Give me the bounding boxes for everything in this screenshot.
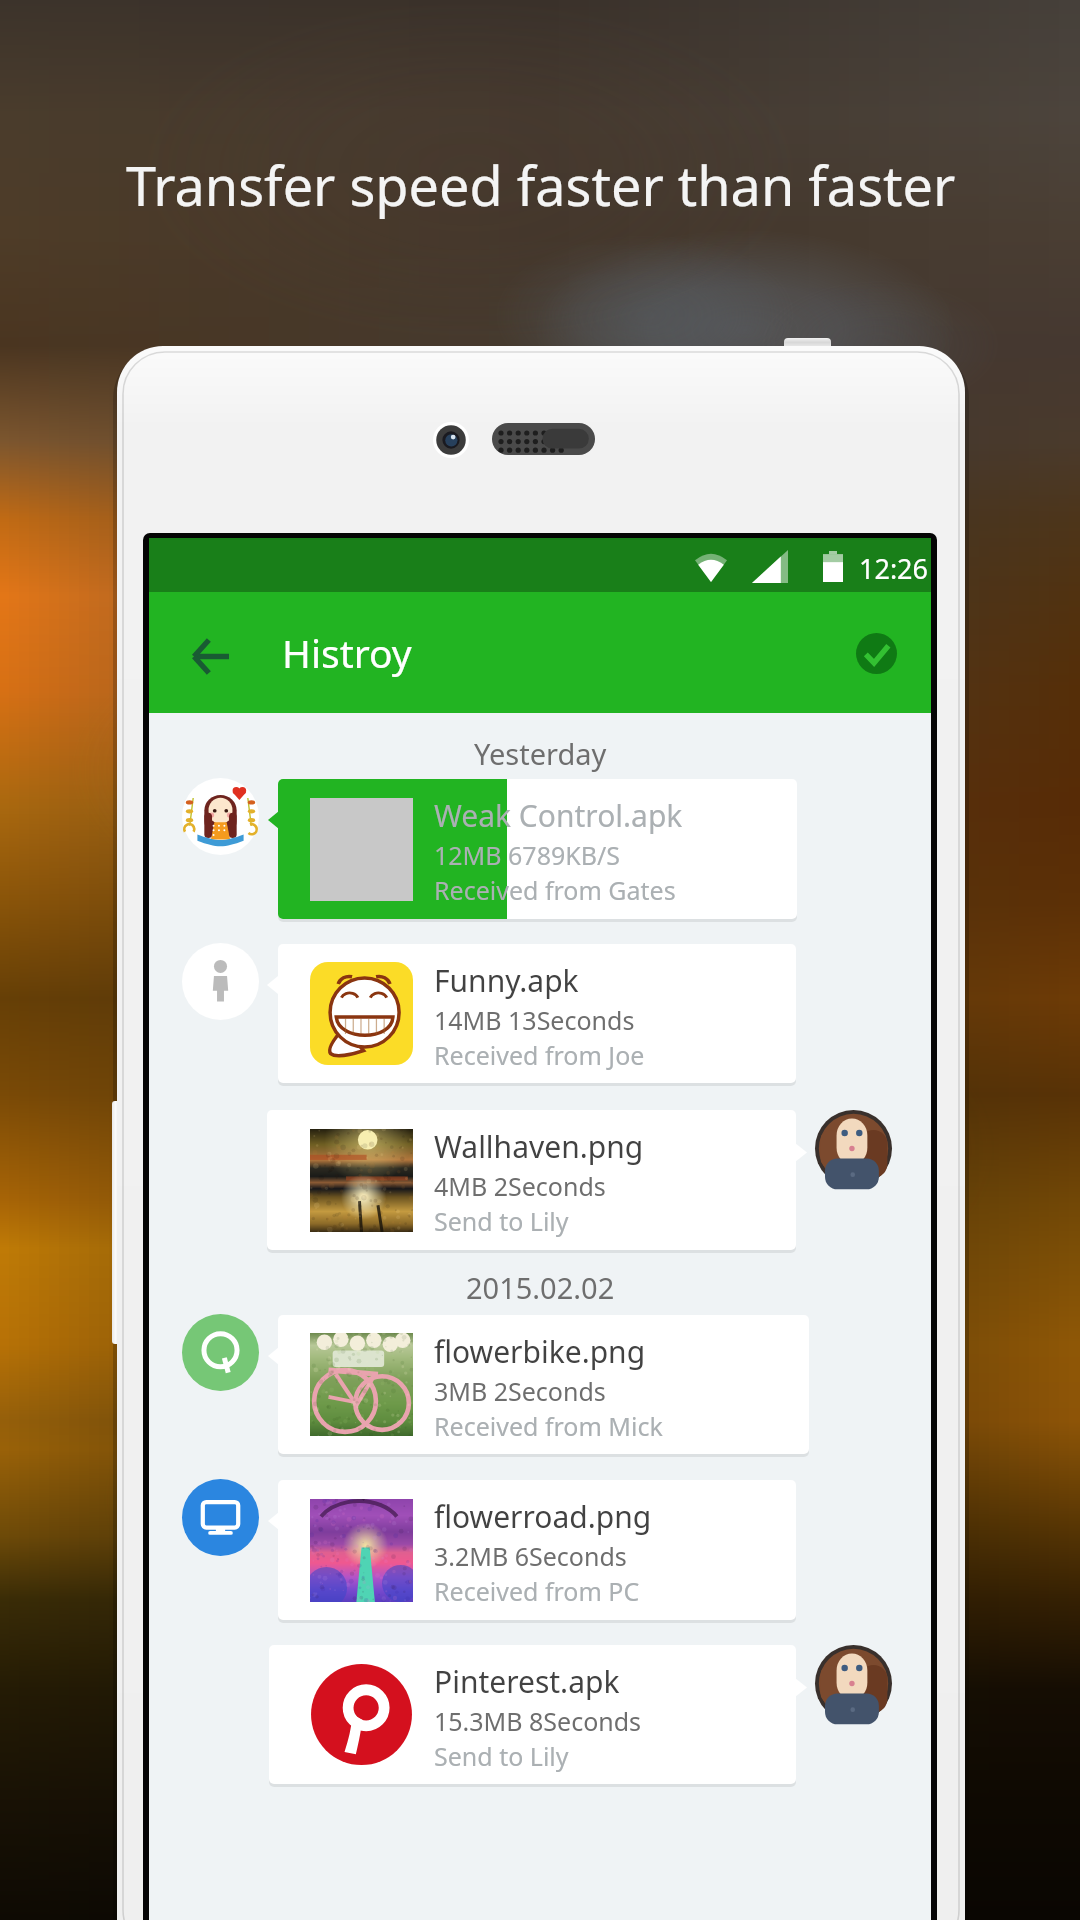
staticText: Weak Control.apk <box>434 795 683 836</box>
staticText: Histroy <box>282 626 412 679</box>
staticText: 4MB 2Seconds <box>434 1169 606 1203</box>
staticText: 12:26 <box>859 550 929 587</box>
staticText: 15.3MB 8Seconds <box>434 1704 642 1738</box>
staticText: 3MB 2Seconds <box>434 1374 606 1408</box>
staticText: Funny.apk <box>434 960 579 1001</box>
staticText: Received from Mick <box>434 1409 663 1443</box>
button[interactable]: flowerroad.png <box>278 1480 796 1620</box>
button[interactable]: Pinterest.apk <box>269 1645 796 1784</box>
staticText: Yesterday <box>474 734 607 773</box>
staticText: 2015.02.02 <box>466 1268 615 1307</box>
button[interactable]: Select all <box>844 621 909 686</box>
staticText: Pinterest.apk <box>434 1661 620 1702</box>
staticText: Wallhaven.png <box>434 1126 644 1167</box>
button[interactable]: Back <box>177 622 245 690</box>
staticText: Transfer speed faster than faster <box>126 148 956 222</box>
staticText: Received from PC <box>434 1574 640 1608</box>
button[interactable]: Funny.apk <box>278 944 796 1083</box>
button[interactable]: Weak Control.apk <box>278 779 797 919</box>
staticText: 12MB 6789KB/S <box>434 838 620 872</box>
staticText: 3.2MB 6Seconds <box>434 1539 627 1573</box>
staticText: Send to Lily <box>434 1204 569 1238</box>
button[interactable]: flowerbike.png <box>278 1315 809 1454</box>
staticText: Received from Gates <box>434 873 676 907</box>
button[interactable]: Wallhaven.png <box>267 1110 796 1250</box>
staticText: Send to Lily <box>434 1739 569 1773</box>
staticText: flowerbike.png <box>434 1331 646 1372</box>
staticText: 14MB 13Seconds <box>434 1003 635 1037</box>
staticText: flowerroad.png <box>434 1496 652 1537</box>
staticText: Received from Joe <box>434 1038 645 1072</box>
